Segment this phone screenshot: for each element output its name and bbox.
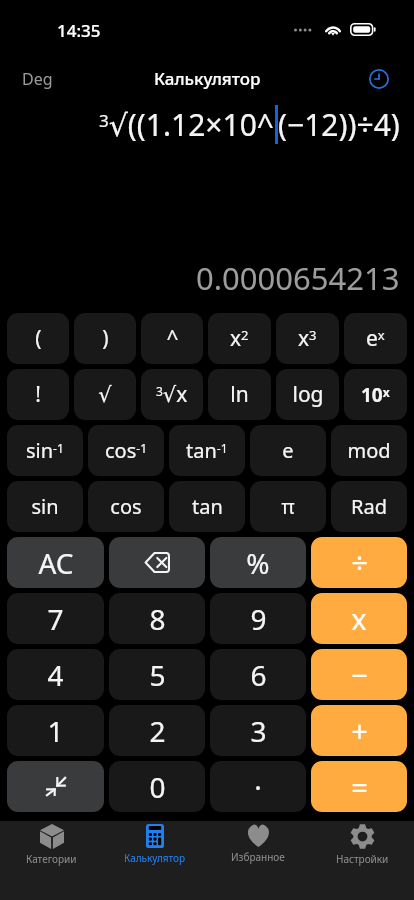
button[interactable]: ÷ [311, 537, 407, 588]
staticText: cos [110, 493, 142, 520]
button[interactable]: = [311, 761, 407, 812]
button[interactable]: √ [74, 369, 136, 420]
button[interactable]: x3 [276, 313, 339, 364]
button[interactable]: 2 [109, 705, 205, 756]
button[interactable]: mod [331, 425, 407, 476]
button[interactable]: Избранное [206, 821, 310, 900]
button[interactable]: 3 [210, 705, 306, 756]
staticText: + [351, 711, 368, 750]
staticText: 2 [149, 712, 166, 750]
button[interactable]: 4 [7, 649, 104, 700]
button[interactable]: sin-1 [7, 425, 83, 476]
button[interactable]: 5 [109, 649, 205, 700]
button[interactable]: log [276, 369, 339, 420]
staticText: log [292, 380, 324, 409]
staticText: 1 [47, 712, 64, 750]
button[interactable]: Калькулятор [103, 821, 206, 900]
staticText: ÷ [351, 543, 368, 582]
staticText: ln [230, 380, 249, 409]
button[interactable]: History [361, 61, 397, 97]
button[interactable]: Rad [331, 481, 407, 532]
staticText: x3 [298, 324, 317, 353]
staticText: (−12))÷4) [278, 104, 400, 145]
button[interactable]: Deg [8, 61, 67, 97]
button[interactable]: cos-1 [88, 425, 164, 476]
button[interactable]: ! [7, 369, 69, 420]
staticText: ^ [166, 324, 179, 353]
button[interactable]: tan [169, 481, 245, 532]
staticText: Калькулятор [154, 67, 261, 90]
button[interactable]: ) [74, 313, 136, 364]
staticText: 0 [149, 768, 166, 806]
button[interactable]: ln [208, 369, 271, 420]
button[interactable]: 3√x [141, 369, 203, 420]
staticText: tan [192, 493, 223, 520]
button[interactable]: e [250, 425, 326, 476]
staticText: sin [31, 493, 59, 520]
button[interactable]: Collapse [7, 761, 104, 812]
button[interactable]: sin [7, 481, 83, 532]
staticText: cos-1 [105, 437, 148, 464]
button[interactable]: x [311, 593, 407, 644]
staticText: 0.0000654213 [196, 257, 400, 299]
staticText: Категории [26, 852, 77, 866]
staticText: 14:35 [57, 19, 101, 42]
button[interactable]: + [311, 705, 407, 756]
button[interactable]: % [210, 537, 306, 588]
staticText: ex [366, 324, 385, 353]
staticText: − [351, 655, 368, 694]
button[interactable]: ^ [141, 313, 203, 364]
staticText: π [281, 493, 295, 520]
staticText: Rad [351, 493, 387, 520]
button[interactable]: 9 [210, 593, 306, 644]
staticText: mod [347, 437, 391, 464]
button[interactable]: 0 [109, 761, 205, 812]
staticText: √ [98, 383, 112, 407]
staticText: Избранное [231, 850, 285, 864]
staticText: 5 [149, 656, 166, 694]
button[interactable]: Настройки [310, 821, 414, 900]
button[interactable]: Категории [0, 821, 103, 900]
staticText: 3√x [156, 380, 188, 409]
staticText: % [246, 544, 270, 582]
staticText: 6 [250, 656, 267, 694]
button[interactable]: AC [7, 537, 104, 588]
button[interactable]: tan-1 [169, 425, 245, 476]
staticText: ! [35, 380, 41, 409]
staticText: 4 [47, 656, 64, 694]
staticText: 3√((1.12×10^ [99, 104, 275, 145]
staticText: ) [102, 324, 109, 353]
button[interactable]: 10x [344, 369, 407, 420]
staticText: 9 [250, 600, 267, 638]
staticText: sin-1 [26, 437, 64, 464]
staticText: x [351, 599, 367, 638]
button[interactable]: · [210, 761, 306, 812]
button[interactable]: cos [88, 481, 164, 532]
staticText: = [351, 767, 368, 806]
staticText: AC [38, 544, 74, 582]
button[interactable]: π [250, 481, 326, 532]
button[interactable]: − [311, 649, 407, 700]
staticText: Настройки [336, 852, 389, 866]
staticText: Deg [22, 68, 53, 90]
staticText: 10x [361, 382, 390, 408]
staticText: x2 [230, 324, 249, 353]
button[interactable]: x2 [208, 313, 271, 364]
staticText: 8 [149, 600, 166, 638]
staticText: 3 [250, 712, 267, 750]
staticText: 7 [47, 600, 64, 638]
button[interactable]: 1 [7, 705, 104, 756]
button[interactable]: 7 [7, 593, 104, 644]
staticText: e [282, 437, 294, 464]
button[interactable]: 8 [109, 593, 205, 644]
staticText: Калькулятор [124, 851, 186, 865]
staticText: tan-1 [186, 437, 228, 464]
staticText: ( [35, 324, 42, 353]
button[interactable]: ex [344, 313, 407, 364]
staticText: · [254, 768, 262, 806]
button[interactable]: ( [7, 313, 69, 364]
button[interactable]: 6 [210, 649, 306, 700]
button[interactable]: Backspace [109, 537, 205, 588]
